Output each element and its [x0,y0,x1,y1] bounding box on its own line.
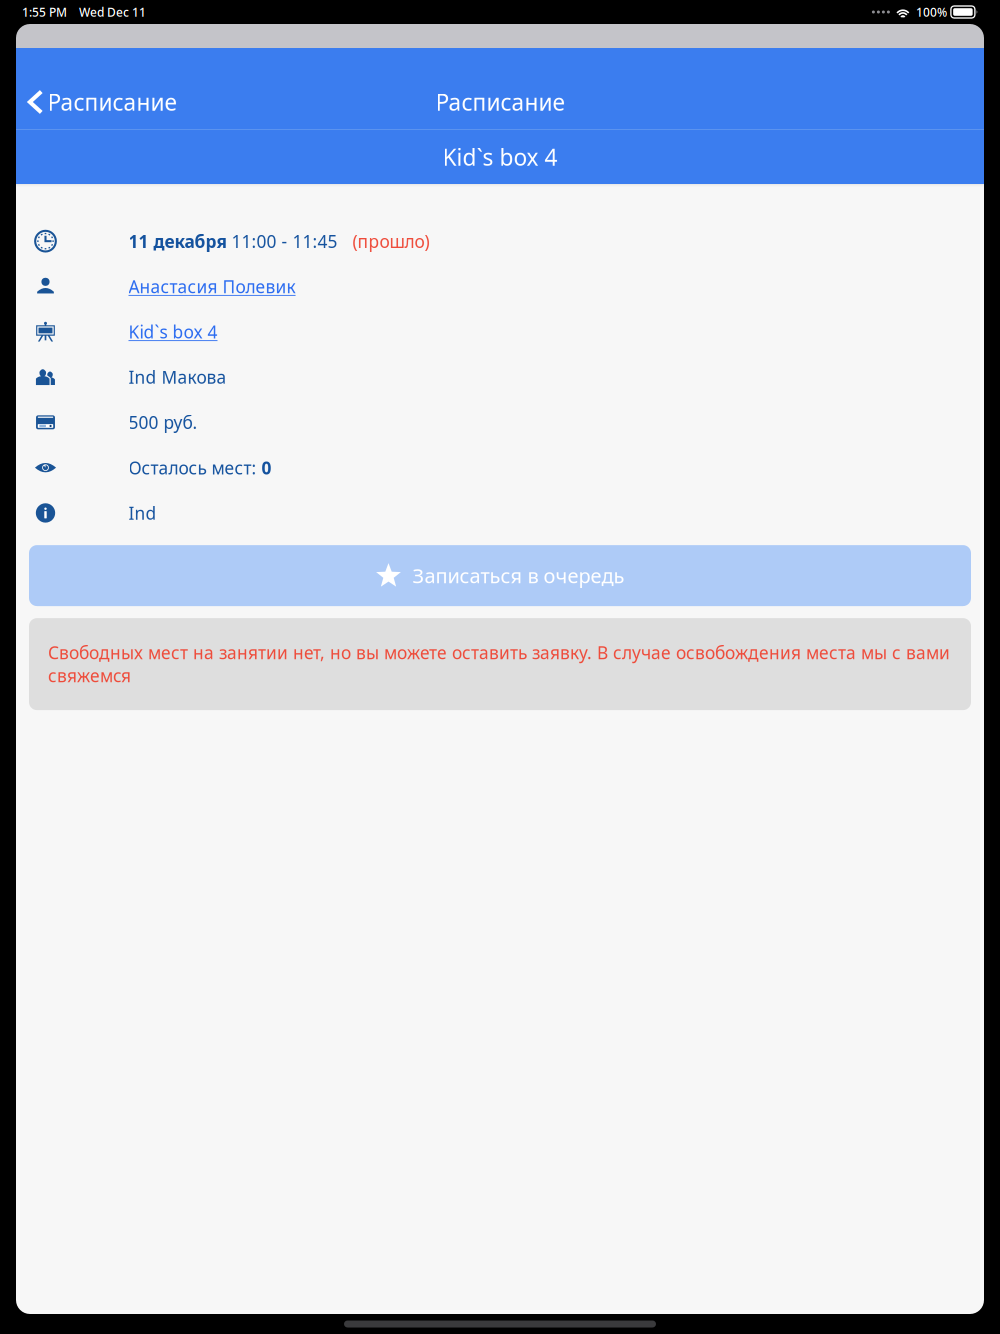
staticText: Расписание [47,87,176,117]
staticText: 11:00 - 11:45 [226,230,337,253]
staticText: Расписание [435,87,564,117]
staticText: Осталось мест: [128,456,261,479]
staticText: Записаться в очередь [412,562,624,589]
staticText: Ind Макова [128,365,226,388]
staticText: Ind [128,501,156,524]
staticText: (прошло) [352,230,429,253]
staticText: 500 руб. [128,411,197,434]
button[interactable]: Анастасия Полевик [128,275,295,298]
staticText: 0 [261,456,271,479]
staticText: Свободных мест на занятии нет, но вы мож… [48,641,950,687]
staticText: Wed Dec 11 [79,4,146,20]
staticText: Анастасия Полевик [128,275,295,298]
staticText: Kid`s box 4 [128,320,217,343]
staticText: Kid`s box 4 [442,142,557,172]
button[interactable]: Back to Расписание [16,75,188,129]
staticText: 100% [916,4,947,20]
button[interactable]: Записаться в очередь [29,545,971,606]
staticText: 11 декабря [128,230,226,253]
staticText: 1:55 PM [22,4,67,20]
button[interactable]: Kid`s box 4 [128,320,217,343]
